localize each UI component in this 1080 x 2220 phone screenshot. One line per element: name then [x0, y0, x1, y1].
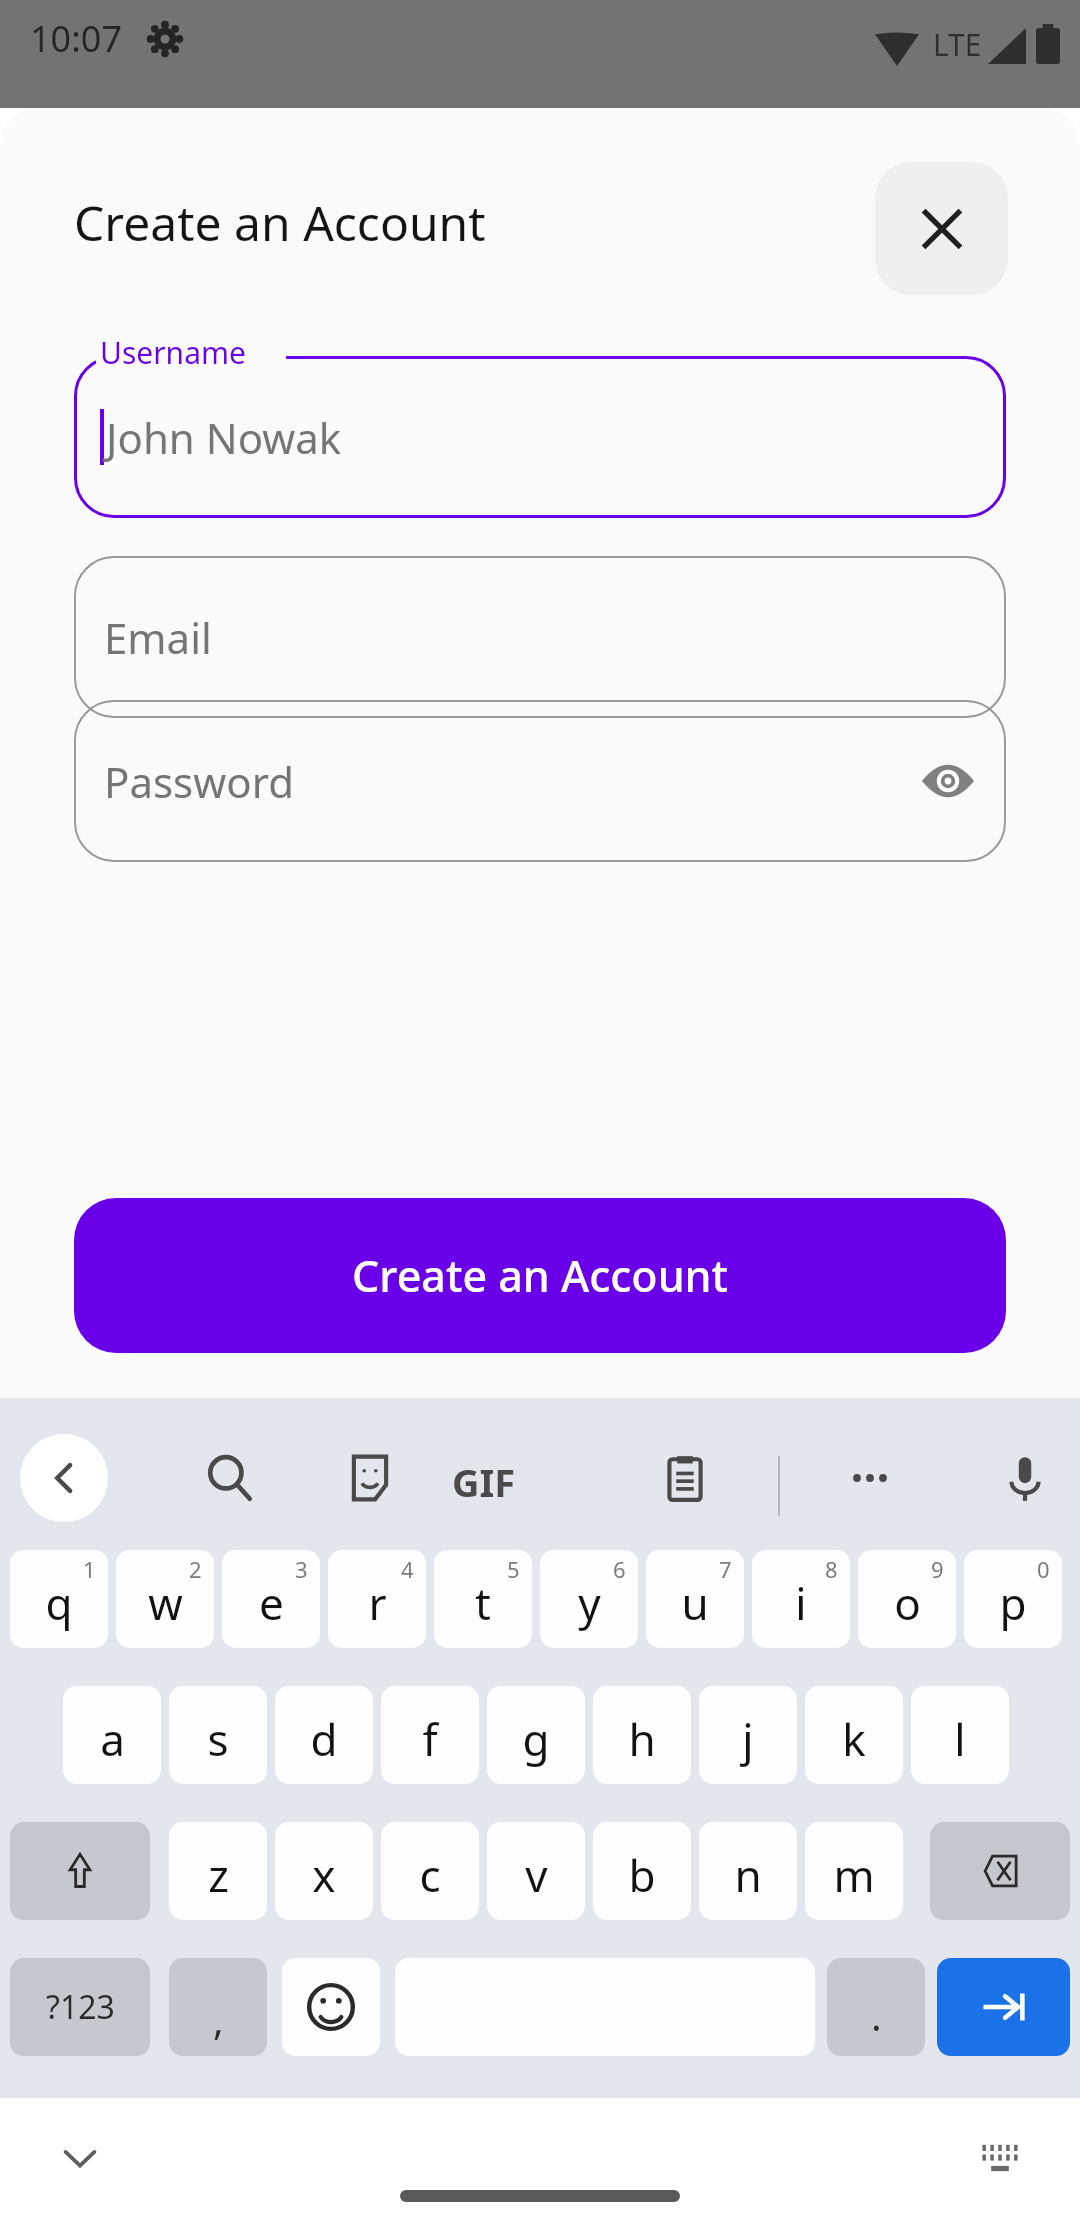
staticText: 5	[507, 1554, 520, 1584]
staticText: 9	[931, 1554, 944, 1584]
staticText: b	[628, 1845, 656, 1905]
button[interactable]: j	[699, 1686, 797, 1784]
staticText: d	[310, 1709, 338, 1769]
button[interactable]: ,	[169, 1958, 267, 2056]
button[interactable]: Password	[74, 700, 1006, 862]
staticText: 10:07	[30, 14, 123, 63]
button[interactable]: .	[827, 1958, 925, 2056]
staticText: 7	[719, 1554, 732, 1584]
button[interactable]: Hide keyboard	[40, 2118, 120, 2198]
staticText: 4	[401, 1554, 414, 1584]
staticText: c	[419, 1845, 441, 1905]
staticText: 1	[83, 1554, 96, 1584]
button[interactable]: m	[805, 1822, 903, 1920]
staticText: r	[368, 1573, 387, 1633]
staticText: n	[734, 1845, 762, 1905]
staticText: y	[578, 1573, 601, 1633]
button[interactable]: i	[752, 1550, 850, 1648]
button[interactable]: Next	[937, 1958, 1070, 2056]
button[interactable]: o	[858, 1550, 956, 1648]
staticText: u	[681, 1573, 709, 1633]
button[interactable]: v	[487, 1822, 585, 1920]
button[interactable]: b	[593, 1822, 691, 1920]
button[interactable]: d	[275, 1686, 373, 1784]
button[interactable]: r	[328, 1550, 426, 1648]
staticText: i	[795, 1573, 807, 1633]
staticText: LTE	[933, 24, 982, 65]
button[interactable]: Close	[875, 162, 1008, 295]
staticText: v	[525, 1845, 548, 1905]
staticText: Password	[104, 753, 294, 810]
button[interactable]: t	[434, 1550, 532, 1648]
button[interactable]: c	[381, 1822, 479, 1920]
button[interactable]: k	[805, 1686, 903, 1784]
button[interactable]: g	[487, 1686, 585, 1784]
button[interactable]: h	[593, 1686, 691, 1784]
button[interactable]: q	[10, 1550, 108, 1648]
button[interactable]: GIF	[452, 1456, 516, 1508]
button[interactable]: Clipboard	[645, 1438, 725, 1518]
staticText: a	[100, 1709, 125, 1769]
staticText: e	[259, 1573, 284, 1633]
staticText: t	[475, 1573, 491, 1633]
button[interactable]: x	[275, 1822, 373, 1920]
button[interactable]: y	[540, 1550, 638, 1648]
staticText: Email	[104, 609, 212, 666]
staticText: z	[208, 1845, 229, 1905]
staticText: 3	[295, 1554, 308, 1584]
button[interactable]: Username	[74, 356, 1006, 518]
staticText: 2	[189, 1554, 202, 1584]
button[interactable]: u	[646, 1550, 744, 1648]
button[interactable]: p	[964, 1550, 1062, 1648]
staticText: j	[742, 1709, 754, 1769]
staticText: g	[522, 1709, 550, 1769]
button[interactable]: Email	[74, 556, 1006, 718]
staticText: Create an Account	[352, 1246, 729, 1305]
button[interactable]: Back	[20, 1434, 108, 1522]
staticText: m	[833, 1845, 875, 1905]
button[interactable]: More options	[830, 1438, 910, 1518]
button[interactable]: Show password	[918, 751, 978, 811]
staticText: k	[842, 1709, 866, 1769]
staticText: q	[45, 1573, 73, 1633]
staticText: l	[954, 1709, 966, 1769]
staticText: 0	[1037, 1554, 1050, 1584]
staticText: Create an Account	[74, 190, 486, 255]
button[interactable]: Stickers	[330, 1438, 410, 1518]
button[interactable]: Search	[190, 1438, 270, 1518]
button[interactable]: l	[911, 1686, 1009, 1784]
button[interactable]: Switch keyboard	[960, 2118, 1040, 2198]
button[interactable]: s	[169, 1686, 267, 1784]
button[interactable]: Shift	[10, 1822, 150, 1920]
staticText: x	[312, 1845, 336, 1905]
staticText: John Nowak	[106, 409, 342, 466]
button[interactable]: z	[169, 1822, 267, 1920]
staticText: w	[148, 1573, 183, 1633]
staticText: p	[999, 1573, 1027, 1633]
staticText: ?123	[46, 1985, 115, 2029]
staticText: o	[894, 1573, 921, 1633]
button[interactable]: Backspace	[930, 1822, 1070, 1920]
button[interactable]: a	[63, 1686, 161, 1784]
button[interactable]: Emoji	[282, 1958, 380, 2056]
staticText: .	[871, 1988, 882, 2042]
staticText: f	[422, 1709, 438, 1769]
staticText: s	[207, 1709, 229, 1769]
staticText: 8	[825, 1554, 838, 1584]
button[interactable]: w	[116, 1550, 214, 1648]
button[interactable]: Create an Account	[74, 1198, 1006, 1353]
staticText: Username	[100, 332, 246, 373]
button[interactable]: e	[222, 1550, 320, 1648]
staticText: h	[628, 1709, 656, 1769]
staticText: 6	[613, 1554, 626, 1584]
button[interactable]: ?123	[10, 1958, 150, 2056]
button[interactable]: Voice input	[985, 1438, 1065, 1518]
staticText: ,	[213, 1992, 224, 2046]
button[interactable]: n	[699, 1822, 797, 1920]
button[interactable]: f	[381, 1686, 479, 1784]
